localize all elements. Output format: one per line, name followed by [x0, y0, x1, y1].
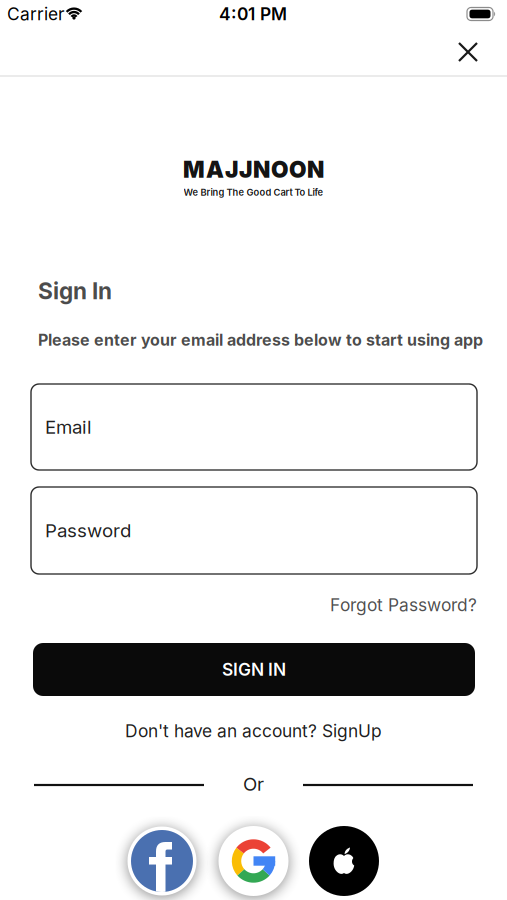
staticText: Forgot Password?: [330, 595, 477, 615]
button[interactable]: Password: [31, 487, 477, 574]
staticText: M A J J N O O N: [183, 156, 324, 183]
button[interactable]: Sign in with Google: [217, 825, 289, 897]
staticText: Carrier: [7, 4, 65, 24]
button[interactable]: Close: [447, 31, 489, 73]
button[interactable]: Don't have an account? SignUp: [125, 721, 382, 741]
staticText: SIGN IN: [222, 659, 286, 680]
staticText: Email: [45, 416, 92, 438]
staticText: Or: [243, 773, 264, 795]
staticText: Don't have an account? SignUp: [125, 721, 382, 741]
button[interactable]: Sign in with Facebook: [126, 825, 198, 897]
staticText: Password: [45, 519, 131, 541]
staticText: Please enter your email address below to…: [38, 331, 483, 349]
button[interactable]: Sign in with Apple: [308, 825, 380, 897]
button[interactable]: Forgot Password?: [330, 595, 477, 615]
staticText: We Bring The Good Cart To Life: [183, 187, 323, 198]
button[interactable]: Email: [31, 384, 477, 470]
staticText: 4:01 PM: [219, 4, 287, 24]
button[interactable]: SIGN IN: [33, 643, 475, 696]
staticText: Sign In: [38, 278, 112, 304]
